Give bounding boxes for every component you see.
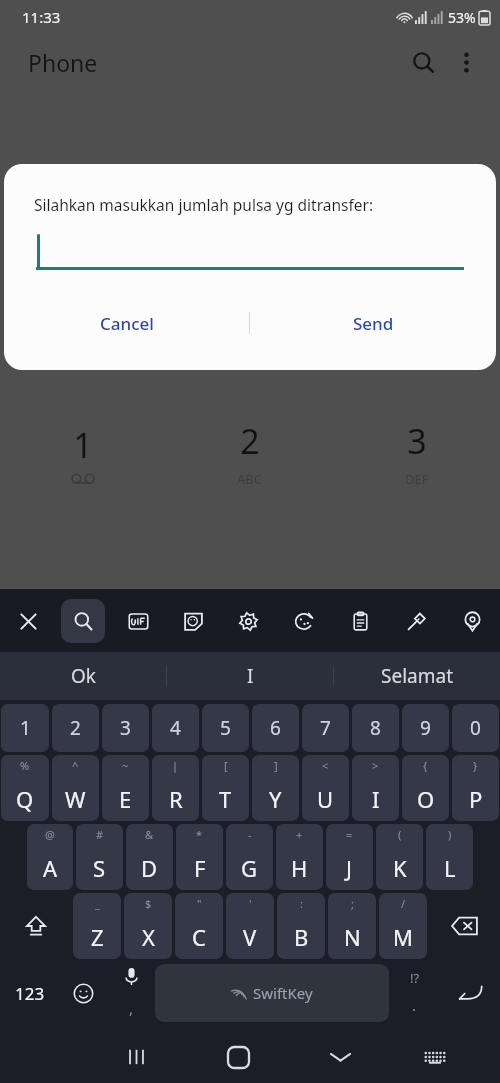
button[interactable]: " (175, 893, 223, 959)
button[interactable]: Hide keyboard (292, 1031, 389, 1083)
staticText: !? (410, 969, 420, 987)
button[interactable]: 3 (102, 704, 149, 752)
button[interactable]: Home (185, 1031, 292, 1083)
button[interactable]: Voice input and comma (107, 962, 155, 1024)
button[interactable]: ^ (52, 755, 99, 821)
button[interactable]: Search (61, 599, 105, 643)
button[interactable]: 1 (0, 408, 166, 498)
button[interactable]: [ (202, 755, 249, 821)
staticText: 2 (70, 715, 81, 741)
button[interactable]: # (76, 824, 123, 890)
staticText: 123 (15, 982, 45, 1005)
button[interactable]: Ok (0, 652, 166, 700)
button[interactable]: Punctuation (389, 962, 440, 1024)
staticText: - (248, 827, 252, 842)
button[interactable]: More options (446, 42, 486, 82)
staticText: 3 (120, 715, 131, 741)
button[interactable]: Send (250, 298, 496, 348)
staticText: M (393, 922, 413, 952)
button[interactable]: > (352, 755, 399, 821)
button[interactable]: % (1, 755, 49, 821)
button[interactable]: Themes (282, 599, 326, 643)
staticText: = (346, 827, 353, 842)
button[interactable]: 123 (1, 962, 59, 1024)
button[interactable]: 5 (202, 704, 249, 752)
button[interactable]: Selamat (334, 652, 500, 700)
button[interactable]: 6 (252, 704, 299, 752)
button[interactable]: GIF (116, 599, 160, 643)
button[interactable]: I (167, 652, 333, 700)
staticText: 53% (448, 8, 476, 27)
button[interactable]: Close (6, 599, 50, 643)
button[interactable]: = (326, 824, 373, 890)
staticText: ~ (122, 758, 129, 773)
button[interactable]: | (152, 755, 199, 821)
staticText: 1 (73, 422, 93, 468)
button[interactable]: 2 (166, 408, 333, 498)
staticText: [ (224, 758, 228, 773)
button[interactable]: Stickers (171, 599, 215, 643)
staticText: " (197, 896, 202, 911)
button[interactable]: Enter (440, 962, 499, 1024)
button[interactable]: @ (27, 824, 73, 890)
staticText: S (93, 853, 106, 883)
button[interactable]: 9 (402, 704, 449, 752)
button[interactable]: 3 (333, 408, 500, 498)
button[interactable]: ; (328, 893, 376, 959)
button[interactable]: + (276, 824, 323, 890)
button[interactable]: Space (155, 964, 389, 1022)
button[interactable]: ' (226, 893, 274, 959)
button[interactable]: / (379, 893, 427, 959)
button[interactable]: 4 (152, 704, 199, 752)
staticText: 11:33 (22, 7, 61, 27)
staticText: ) (448, 827, 452, 842)
button[interactable]: 2 (52, 704, 99, 752)
button[interactable]: ( (376, 824, 423, 890)
button[interactable]: ~ (102, 755, 149, 821)
staticText: E (119, 784, 132, 814)
staticText: Y (269, 784, 282, 814)
button[interactable]: Settings (226, 599, 270, 643)
button[interactable]: ] (252, 755, 299, 821)
button[interactable]: Pin (394, 599, 438, 643)
staticText: DEF (405, 470, 429, 488)
button[interactable]: Shift (1, 893, 70, 959)
staticText: & (145, 827, 154, 842)
button[interactable]: _ (73, 893, 121, 959)
button[interactable]: 1 (1, 704, 49, 752)
staticText: 3 (407, 418, 427, 464)
button[interactable]: } (452, 755, 499, 821)
button[interactable]: Cancel (4, 298, 249, 348)
staticText: 7 (320, 715, 331, 741)
staticText: ' (249, 896, 252, 911)
staticText: V (243, 922, 257, 952)
button[interactable]: 0 (452, 704, 499, 752)
button[interactable]: & (126, 824, 173, 890)
staticText: 0 (470, 715, 481, 741)
button[interactable]: Search (400, 39, 446, 85)
button[interactable]: 8 (352, 704, 399, 752)
staticText: D (141, 853, 158, 883)
button[interactable]: Emoji (59, 962, 107, 1024)
staticText: SwiftKey (253, 983, 313, 1003)
staticText: } (473, 758, 478, 773)
staticText: O (417, 784, 435, 814)
button[interactable]: Recents (88, 1031, 185, 1083)
button[interactable]: : (277, 893, 325, 959)
staticText: 8 (370, 715, 381, 741)
button[interactable]: { (402, 755, 449, 821)
button[interactable]: Backspace (430, 893, 499, 959)
button[interactable]: Switch keyboard (389, 1031, 481, 1083)
button[interactable]: 7 (302, 704, 349, 752)
button[interactable]: - (226, 824, 273, 890)
staticText: ^ (72, 758, 79, 773)
button[interactable]: * (176, 824, 223, 890)
button[interactable]: $ (124, 893, 172, 959)
staticText: 1 (20, 715, 31, 741)
button[interactable]: Clipboard (338, 599, 382, 643)
button[interactable]: Location (450, 599, 494, 643)
button[interactable]: < (302, 755, 349, 821)
staticText: 9 (420, 715, 431, 741)
staticText: J (346, 853, 353, 883)
button[interactable]: ) (426, 824, 473, 890)
